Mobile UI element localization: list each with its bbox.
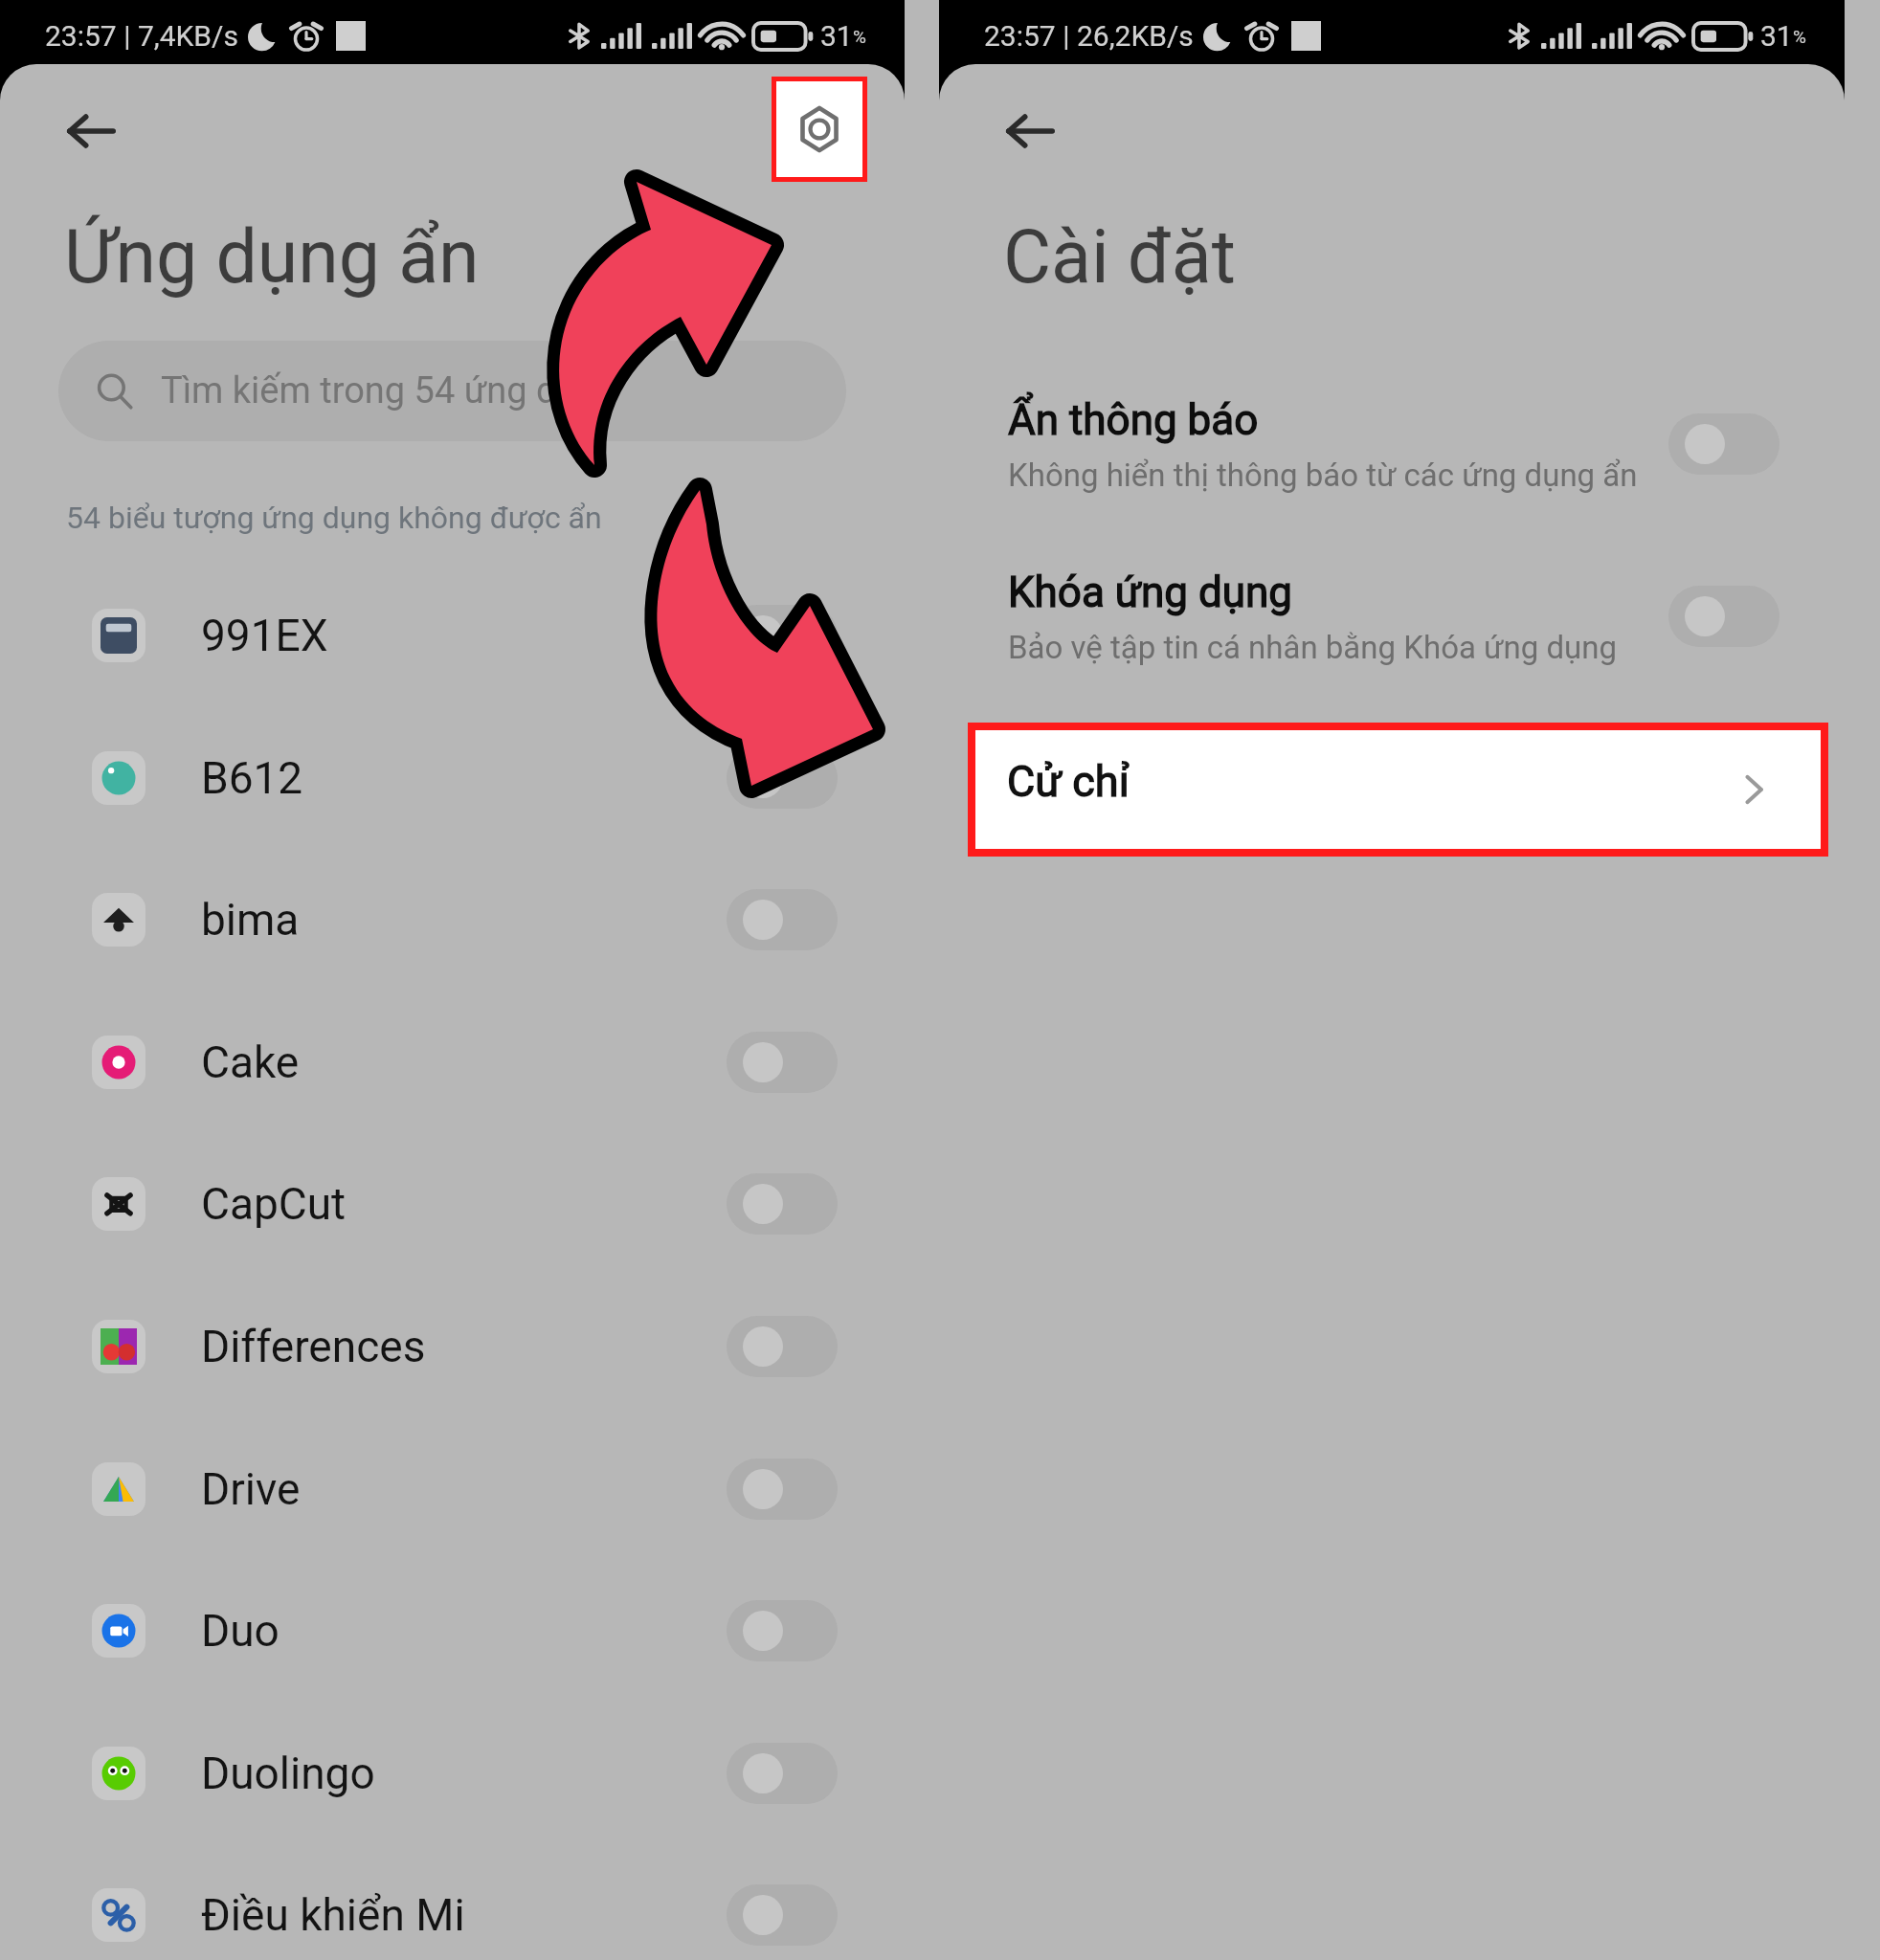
- button[interactable]: bima: [0, 852, 905, 988]
- button[interactable]: Hide Duo: [727, 1600, 838, 1661]
- staticText: Cake: [201, 1036, 300, 1088]
- button[interactable]: Điều khiển Mi: [0, 1847, 905, 1960]
- button[interactable]: Hide Điều khiển Mi: [727, 1884, 838, 1946]
- staticText: CapCut: [201, 1178, 347, 1230]
- button[interactable]: Ẩn thông báo: [939, 382, 1845, 506]
- button[interactable]: Duolingo: [0, 1705, 905, 1841]
- button[interactable]: Cử chỉ: [975, 730, 1821, 849]
- staticText: Cài đặt: [1003, 214, 1236, 301]
- button[interactable]: Duo: [0, 1563, 905, 1699]
- staticText: bima: [201, 894, 300, 946]
- staticText: Tìm kiếm trong 54 ứng dụng: [161, 369, 617, 412]
- button[interactable]: Hide Drive: [727, 1459, 838, 1520]
- staticText: Duo: [201, 1605, 280, 1657]
- button[interactable]: Hide Duolingo: [727, 1743, 838, 1804]
- staticText: Ẩn thông báo: [1008, 395, 1259, 445]
- staticText: 991EX: [201, 610, 328, 661]
- staticText: B612: [201, 752, 303, 804]
- staticText: %: [853, 26, 866, 47]
- button[interactable]: Khóa ứng dụng: [939, 554, 1845, 679]
- button[interactable]: Hide 991EX: [727, 605, 838, 666]
- button[interactable]: Cake: [0, 994, 905, 1130]
- button[interactable]: B612: [0, 710, 905, 846]
- staticText: Ứng dụng ẩn: [64, 214, 480, 301]
- button[interactable]: Back: [992, 93, 1068, 169]
- button[interactable]: Hide Differences: [727, 1316, 838, 1377]
- staticText: %: [1793, 26, 1806, 47]
- staticText: 23:57 | 7,4KB/s: [45, 19, 238, 53]
- staticText: Differences: [201, 1321, 426, 1372]
- button[interactable]: Back: [53, 93, 129, 169]
- button[interactable]: Settings: [776, 81, 862, 177]
- button[interactable]: Ẩn thông báo: [1668, 413, 1779, 475]
- staticText: Cử chỉ: [1007, 756, 1130, 807]
- button[interactable]: Hide Cake: [727, 1032, 838, 1093]
- staticText: Duolingo: [201, 1748, 375, 1799]
- staticText: Điều khiển Mi: [201, 1889, 465, 1941]
- staticText: Không hiển thị thông báo từ các ứng dụng…: [1008, 457, 1638, 494]
- button[interactable]: Khóa ứng dụng: [1668, 586, 1779, 647]
- staticText: 54 biểu tượng ứng dụng không được ẩn: [66, 500, 602, 536]
- staticText: Drive: [201, 1463, 301, 1515]
- staticText: 23:57 | 26,2KB/s: [984, 19, 1194, 53]
- button[interactable]: Drive: [0, 1421, 905, 1557]
- button[interactable]: Hide CapCut: [727, 1173, 838, 1235]
- button[interactable]: Hide bima: [727, 889, 838, 950]
- staticText: Khóa ứng dụng: [1008, 568, 1292, 617]
- button[interactable]: Differences: [0, 1279, 905, 1414]
- button[interactable]: Hide B612: [727, 747, 838, 809]
- button[interactable]: CapCut: [0, 1136, 905, 1272]
- button[interactable]: 991EX: [0, 568, 905, 703]
- button[interactable]: Tìm kiếm trong 54 ứng dụng: [58, 341, 846, 441]
- staticText: 31: [1760, 19, 1793, 53]
- staticText: Bảo vệ tập tin cá nhân bằng Khóa ứng dụn…: [1008, 629, 1618, 666]
- staticText: 31: [820, 19, 853, 53]
